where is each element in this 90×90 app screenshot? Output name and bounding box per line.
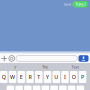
button[interactable]: R — [26, 71, 34, 83]
button[interactable]: W — [9, 71, 16, 83]
button[interactable]: H — [50, 86, 58, 90]
staticText: Sent — [64, 2, 71, 7]
staticText: The — [42, 64, 48, 70]
staticText: U — [54, 73, 58, 81]
button[interactable]: Camera — [8, 54, 15, 63]
button[interactable]: U — [52, 71, 60, 83]
button[interactable]: The — [30, 63, 60, 71]
button[interactable]: “I” — [0, 63, 30, 71]
button[interactable]: D — [24, 86, 32, 90]
staticText: Q — [2, 73, 6, 81]
button[interactable]: Q — [0, 71, 7, 83]
button[interactable]: I — [61, 71, 69, 83]
button[interactable]: Send audio message — [78, 55, 88, 62]
staticText: P — [81, 73, 84, 81]
button[interactable]: T — [35, 71, 42, 83]
button[interactable]: O — [70, 71, 77, 83]
staticText: E — [20, 73, 23, 81]
staticText: I — [64, 73, 66, 81]
button[interactable]: J — [59, 86, 67, 90]
staticText: Y — [46, 73, 49, 81]
staticText: Yes! — [75, 1, 85, 8]
staticText: Text — [71, 64, 78, 70]
button[interactable]: Y — [44, 71, 51, 83]
staticText: “I” — [13, 64, 16, 70]
staticText: R — [28, 73, 31, 81]
staticText: T — [37, 73, 40, 81]
button[interactable]: E — [17, 71, 25, 83]
staticText: W — [10, 73, 15, 81]
staticText: O — [72, 73, 76, 81]
button[interactable]: Add attachment — [0, 54, 8, 63]
button[interactable]: S — [15, 86, 23, 90]
button[interactable]: Text — [60, 63, 90, 71]
button[interactable]: P — [79, 71, 86, 83]
